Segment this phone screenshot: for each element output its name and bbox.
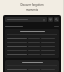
button[interactable]: [5, 29, 59, 58]
staticText: Discover forgotten: [20, 3, 44, 7]
staticText: moments: [26, 8, 38, 12]
button[interactable]: Search: [54, 17, 59, 22]
button[interactable]: Filter: [48, 17, 53, 22]
button[interactable]: [5, 24, 59, 28]
button[interactable]: [5, 17, 47, 22]
button[interactable]: [5, 60, 59, 72]
